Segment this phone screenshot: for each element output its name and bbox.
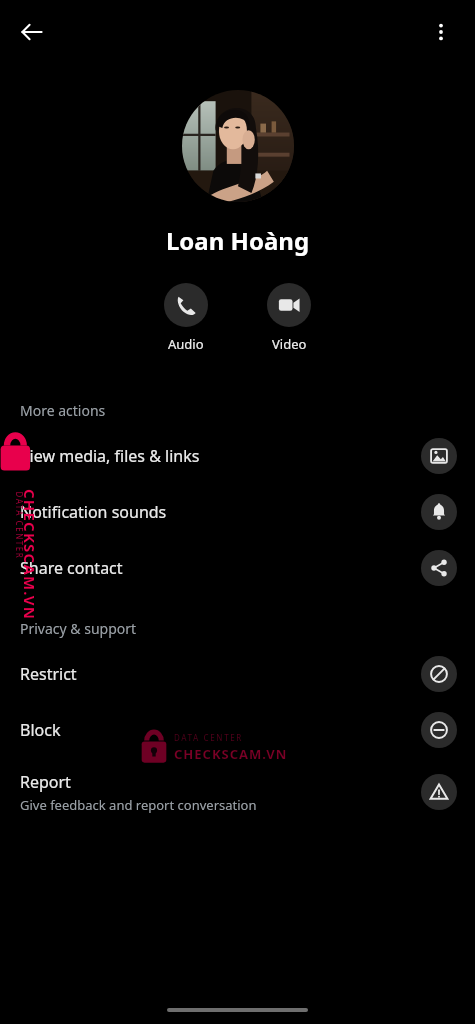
button[interactable]: More options	[419, 10, 463, 54]
staticText: Privacy & support	[20, 619, 137, 638]
button[interactable]: Block	[0, 702, 475, 758]
staticText: CHECKSCAM.VN	[20, 489, 40, 621]
staticText: Loan Hoàng	[0, 224, 475, 257]
staticText: More actions	[20, 401, 106, 420]
staticText: Restrict	[20, 663, 77, 685]
button[interactable]: Back	[10, 10, 54, 54]
staticText: Block	[20, 719, 61, 741]
button[interactable]: Restrict	[0, 646, 475, 702]
button[interactable]: Share contact	[0, 540, 475, 596]
staticText: Audio	[168, 335, 204, 353]
staticText: Share contact	[20, 557, 123, 579]
button[interactable]: Report	[0, 758, 475, 826]
button[interactable]: Audio	[156, 281, 216, 355]
staticText: Video	[272, 335, 307, 353]
staticText: DATA CENTER	[13, 491, 24, 559]
button[interactable]: View media, files & links	[0, 428, 475, 484]
button[interactable]	[182, 90, 294, 202]
staticText: CHECKSCAM.VN	[174, 745, 288, 763]
staticText: Report	[20, 771, 71, 793]
staticText: Give feedback and report conversation	[20, 796, 257, 814]
staticText: DATA CENTER	[174, 732, 243, 743]
staticText: Notification sounds	[20, 501, 167, 523]
staticText: View media, files & links	[20, 445, 200, 467]
button[interactable]: Video	[259, 281, 319, 355]
button[interactable]: Notification sounds	[0, 484, 475, 540]
